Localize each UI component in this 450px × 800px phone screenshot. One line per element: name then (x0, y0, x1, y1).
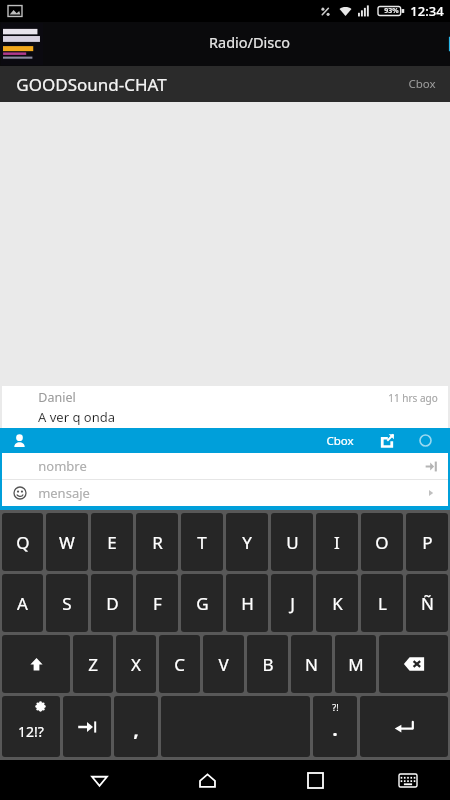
button[interactable]: Symbols (2, 696, 60, 757)
staticText: Daniel (38, 389, 76, 406)
button[interactable]: D (91, 574, 133, 632)
staticText: X (131, 653, 141, 676)
button[interactable]: I (316, 513, 358, 571)
button[interactable]: G (181, 574, 223, 632)
button[interactable]: Recent apps (293, 760, 337, 800)
button[interactable]: N (291, 635, 332, 693)
button[interactable]: Cbox (320, 433, 360, 449)
button[interactable]: S (46, 574, 88, 632)
button[interactable]: Y (226, 513, 268, 571)
button[interactable]: Back (77, 760, 121, 800)
button[interactable]: M (335, 635, 376, 693)
button[interactable]: Refresh (412, 428, 438, 453)
button[interactable]: T (181, 513, 223, 571)
button[interactable]: Daniel (2, 386, 448, 428)
staticText: B (262, 653, 274, 676)
staticText: Q (16, 531, 30, 554)
staticText: 12:34 (410, 2, 444, 20)
staticText: U (286, 531, 299, 554)
staticText: W (59, 531, 75, 554)
button[interactable]: P (406, 513, 448, 571)
staticText: , (133, 718, 139, 743)
staticText: E (107, 531, 117, 554)
button[interactable]: Account (0, 428, 38, 453)
staticText: mensaje (38, 484, 90, 502)
button[interactable]: mensaje (2, 480, 448, 506)
button[interactable]: Ñ (406, 574, 448, 632)
button[interactable]: K (316, 574, 358, 632)
staticText: K (332, 592, 343, 615)
staticText: F (153, 592, 162, 615)
button[interactable]: Radio/Disco (48, 22, 450, 66)
staticText: ?! (332, 701, 339, 713)
staticText: N (305, 653, 318, 676)
staticText: A (17, 592, 28, 615)
button[interactable]: F (136, 574, 178, 632)
button[interactable]: H (226, 574, 268, 632)
button[interactable]: Z (73, 635, 113, 693)
staticText: R (152, 531, 163, 554)
staticText: 12!? (18, 722, 44, 741)
button[interactable]: U (271, 513, 313, 571)
staticText: D (106, 592, 119, 615)
button[interactable]: L (361, 574, 403, 632)
staticText: O (375, 531, 389, 554)
staticText: J (290, 592, 295, 615)
staticText: 93% (384, 6, 399, 16)
button[interactable]: B (247, 635, 288, 693)
staticText: . (332, 717, 338, 742)
button[interactable]: Period (313, 696, 357, 757)
button[interactable]: W (46, 513, 88, 571)
staticText: Cbox (408, 76, 436, 92)
button[interactable]: X (116, 635, 156, 693)
staticText: M (348, 653, 364, 676)
button[interactable]: Open in browser (374, 428, 400, 453)
staticText: C (174, 653, 185, 676)
staticText: Radio/Disco (209, 32, 290, 52)
staticText: T (197, 531, 207, 554)
staticText: H (241, 592, 254, 615)
button[interactable]: E (91, 513, 133, 571)
staticText: Y (242, 531, 252, 554)
button[interactable]: O (361, 513, 403, 571)
button[interactable]: Enter (360, 696, 448, 757)
button[interactable]: Home (185, 760, 229, 800)
button[interactable]: J (271, 574, 313, 632)
staticText: Z (88, 653, 98, 676)
staticText: A ver q onda (38, 408, 115, 425)
button[interactable]: A (2, 574, 43, 632)
button[interactable]: GOODSound-CHAT (0, 66, 450, 102)
staticText: S (62, 592, 72, 615)
button[interactable]: R (136, 513, 178, 571)
button[interactable]: V (203, 635, 244, 693)
button[interactable]: GOOD Sound logo (0, 22, 44, 66)
staticText: G (196, 592, 209, 615)
button[interactable]: Tab (63, 696, 111, 757)
button[interactable]: Backspace (379, 635, 448, 693)
staticText: L (378, 592, 387, 615)
staticText: 11 hrs ago (388, 391, 438, 405)
staticText: Ñ (421, 592, 434, 615)
staticText: nombre (38, 457, 87, 475)
button[interactable]: Shift (2, 635, 70, 693)
button[interactable]: Comma (114, 696, 158, 757)
staticText: P (422, 531, 433, 554)
button[interactable]: nombre (2, 453, 448, 479)
staticText: GOODSound-CHAT (16, 73, 167, 96)
staticText: Cbox (326, 433, 354, 449)
button[interactable]: C (159, 635, 200, 693)
staticText: I (334, 531, 340, 554)
staticText: V (218, 653, 229, 676)
button[interactable]: Keyboard (388, 760, 428, 800)
button[interactable]: Q (2, 513, 43, 571)
